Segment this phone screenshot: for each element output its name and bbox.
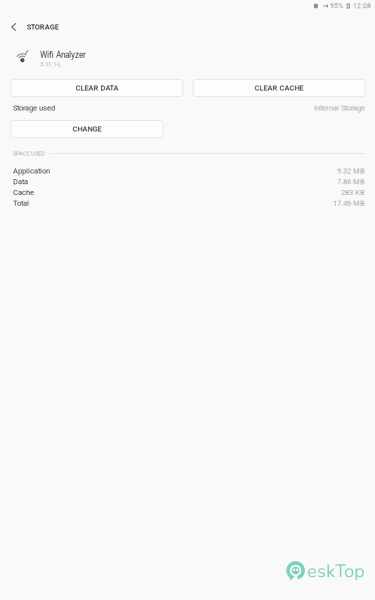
staticText: Storage used: [13, 104, 55, 112]
staticText: 17.46 MB: [333, 199, 365, 208]
staticText: eskTop: [307, 559, 364, 584]
staticText: 9.32 MB: [337, 166, 365, 175]
button[interactable]: CLEAR CACHE: [193, 79, 365, 96]
staticText: 7.86 MB: [337, 177, 365, 186]
staticText: Wifi Analyzer: [40, 50, 86, 60]
staticText: SPACE USED: [13, 150, 45, 157]
button[interactable]: CLEAR DATA: [11, 79, 183, 96]
button[interactable]: CHANGE: [11, 120, 163, 137]
staticText: 3.11.1-L: [40, 61, 61, 68]
staticText: Internal Storage: [314, 104, 365, 112]
staticText: 12:08: [353, 2, 371, 10]
staticText: CHANGE: [72, 125, 101, 133]
staticText: CLEAR CACHE: [254, 84, 303, 92]
staticText: 95%: [330, 2, 343, 10]
staticText: Application: [13, 166, 50, 175]
staticText: 283 KB: [341, 188, 365, 197]
staticText: CLEAR DATA: [75, 84, 118, 92]
staticText: Cache: [13, 188, 34, 197]
staticText: Total: [13, 199, 29, 208]
staticText: Data: [13, 177, 28, 186]
button[interactable]: Back: [6, 18, 21, 36]
staticText: STORAGE: [27, 23, 59, 31]
